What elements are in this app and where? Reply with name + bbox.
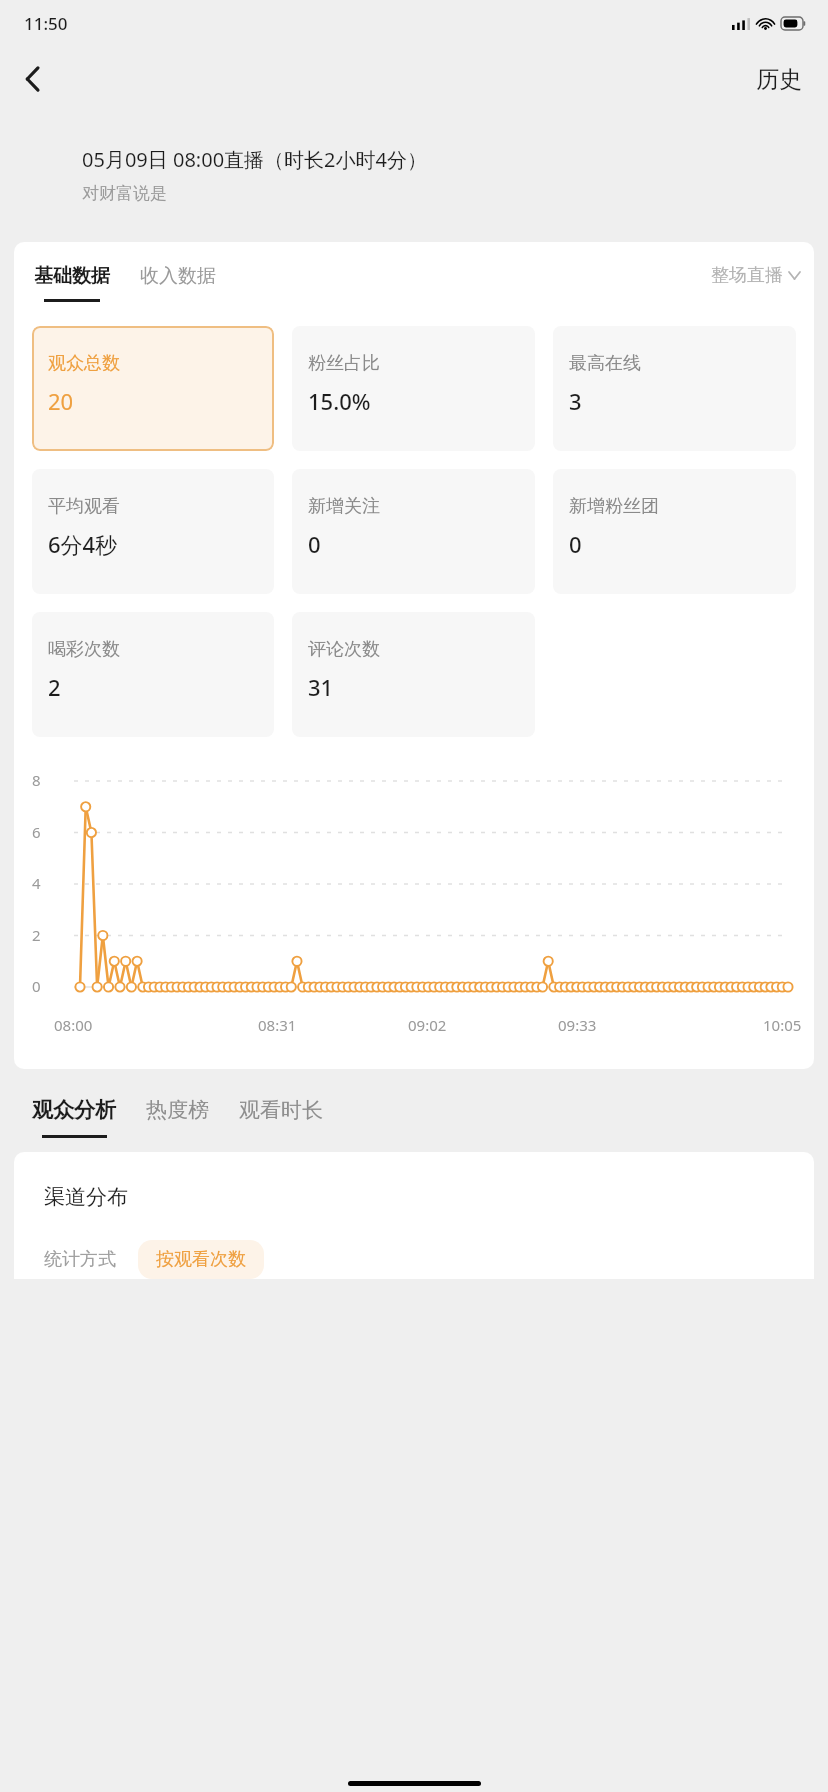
button[interactable]: 收入数据 xyxy=(138,264,218,288)
staticText: 8 xyxy=(32,770,41,790)
staticText: 0 xyxy=(308,529,321,559)
button[interactable]: 粉丝占比 xyxy=(292,326,535,451)
button[interactable]: 新增粉丝团 xyxy=(553,469,796,594)
button[interactable]: 平均观看 xyxy=(32,469,274,594)
button[interactable]: Back xyxy=(8,55,56,103)
button[interactable]: 观众分析 xyxy=(32,1097,116,1138)
button[interactable]: 按观看次数 xyxy=(138,1240,264,1279)
button[interactable]: 新增关注 xyxy=(292,469,535,594)
staticText: 3 xyxy=(569,386,582,416)
staticText: 最高在线 xyxy=(569,352,641,375)
staticText: 观众总数 xyxy=(48,352,120,375)
button[interactable]: 基础数据 xyxy=(32,264,112,302)
staticText: 喝彩次数 xyxy=(48,638,120,661)
staticText: 11:50 xyxy=(24,12,68,35)
staticText: 6 xyxy=(32,822,41,842)
staticText: 0 xyxy=(32,976,41,996)
staticText: 10:05 xyxy=(763,1015,802,1035)
staticText: 收入数据 xyxy=(140,264,216,288)
staticText: 20 xyxy=(48,386,74,416)
button[interactable]: 热度榜 xyxy=(146,1097,209,1123)
staticText: 热度榜 xyxy=(146,1097,209,1123)
staticText: 观众分析 xyxy=(32,1097,116,1123)
staticText: 6分4秒 xyxy=(48,529,118,559)
button[interactable]: 观众总数 xyxy=(32,326,274,451)
staticText: 4 xyxy=(32,873,41,893)
staticText: 基础数据 xyxy=(34,264,110,288)
staticText: 粉丝占比 xyxy=(308,352,380,375)
button[interactable]: 整场直播 xyxy=(711,264,800,287)
staticText: 15.0% xyxy=(308,386,371,416)
staticText: 渠道分布 xyxy=(44,1184,128,1210)
staticText: 评论次数 xyxy=(308,638,380,661)
staticText: 按观看次数 xyxy=(156,1248,246,1271)
button[interactable]: 观看时长 xyxy=(239,1097,323,1123)
button[interactable]: 评论次数 xyxy=(292,612,535,737)
staticText: 统计方式 xyxy=(44,1248,116,1271)
staticText: 2 xyxy=(48,672,61,702)
staticText: 08:31 xyxy=(258,1015,297,1035)
staticText: 08:00 xyxy=(54,1015,93,1035)
staticText: 0 xyxy=(569,529,582,559)
staticText: 对财富说是 xyxy=(82,183,167,204)
staticText: 31 xyxy=(308,672,334,702)
staticText: 新增关注 xyxy=(308,495,380,518)
staticText: 历史 xyxy=(756,65,802,94)
staticText: 观看时长 xyxy=(239,1097,323,1123)
staticText: 整场直播 xyxy=(711,264,783,287)
staticText: 09:02 xyxy=(408,1015,447,1035)
staticText: 2 xyxy=(32,925,41,945)
button[interactable]: 喝彩次数 xyxy=(32,612,274,737)
staticText: 05月09日 08:00直播（时长2小时4分） xyxy=(82,146,427,173)
button[interactable]: 最高在线 xyxy=(553,326,796,451)
staticText: 09:33 xyxy=(558,1015,597,1035)
staticText: 平均观看 xyxy=(48,495,120,518)
staticText: 新增粉丝团 xyxy=(569,495,659,518)
